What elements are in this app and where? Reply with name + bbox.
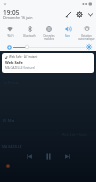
button[interactable]: Expand — [85, 9, 95, 19]
staticText: Données mobiles — [43, 34, 55, 41]
button[interactable]: Pause — [43, 151, 53, 161]
staticText: 19:05 — [3, 8, 20, 17]
button[interactable]: Auto brightness — [7, 45, 12, 50]
staticText: Bluetooth — [23, 34, 36, 38]
staticText: Web Safe — [5, 60, 23, 65]
button[interactable]: Next — [62, 151, 72, 161]
staticText: MA GAZELLE (lecture) — [5, 66, 36, 70]
staticText: Rotation automatique — [78, 34, 95, 41]
button[interactable]: Edit — [63, 9, 73, 19]
button[interactable] — [13, 47, 85, 48]
staticText: Son — [65, 34, 70, 38]
button[interactable]: Données mobiles — [39, 26, 58, 41]
button[interactable]: Settings — [74, 9, 84, 19]
staticText: El Ma — [3, 118, 15, 124]
staticText: Wi-Fi — [7, 34, 14, 38]
button[interactable]: Wi-Fi — [0, 26, 20, 38]
staticText: Web Safe · À l'instant — [9, 55, 38, 59]
button[interactable]: Web Safe · À l'instant — [2, 53, 94, 73]
button[interactable]: Bluetooth — [20, 26, 39, 38]
button[interactable]: Rotation automatique — [77, 26, 96, 41]
staticText: Dimanche 16 juin — [3, 15, 33, 20]
button[interactable]: Son — [58, 26, 77, 38]
staticText: Web Safe • Radio — [62, 133, 88, 137]
button[interactable]: Brightness — [86, 44, 92, 50]
staticText: MA GAZELLE — [2, 145, 22, 149]
button[interactable]: Previous — [24, 151, 34, 161]
